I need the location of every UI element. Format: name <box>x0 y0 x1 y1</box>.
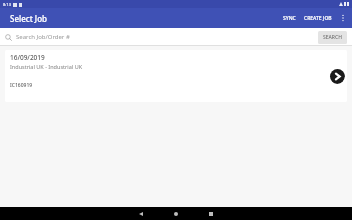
staticText: SEARCH <box>323 34 342 41</box>
button[interactable]: Recent apps <box>202 207 220 220</box>
staticText: CREATE JOB <box>304 15 332 22</box>
staticText: Select Job <box>10 13 47 24</box>
button[interactable]: SYNC <box>279 12 300 25</box>
button[interactable]: Search Job/Order # <box>5 33 318 41</box>
staticText: 8:13 <box>3 2 11 7</box>
button[interactable]: CREATE JOB <box>300 12 336 25</box>
button[interactable]: Home <box>167 207 185 220</box>
staticText: SYNC <box>283 15 296 22</box>
button[interactable]: Back <box>132 207 150 220</box>
staticText: IC160919 <box>10 82 33 89</box>
button[interactable]: More options <box>336 11 350 25</box>
staticText: Search Job/Order # <box>16 33 70 41</box>
staticText: Industrial UK - Industrial UK <box>10 63 83 70</box>
button[interactable]: 16/09/2019 <box>5 50 347 102</box>
staticText: 16/09/2019 <box>10 53 45 62</box>
button[interactable]: Open job <box>329 68 345 84</box>
button[interactable]: SEARCH <box>318 31 347 44</box>
